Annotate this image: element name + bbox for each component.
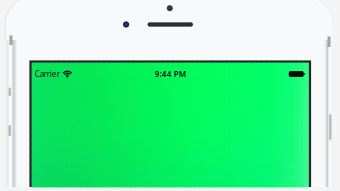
staticText: Carrier bbox=[35, 69, 60, 79]
staticText: 9:44 PM bbox=[155, 69, 186, 79]
